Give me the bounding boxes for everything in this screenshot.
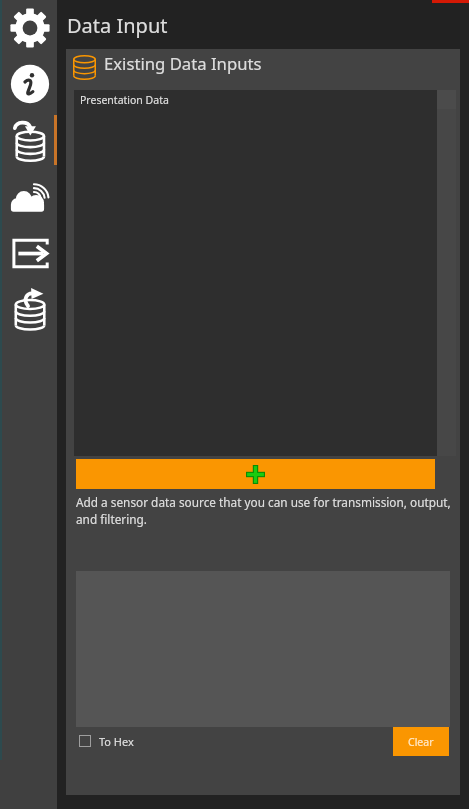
- button[interactable]: Add data input: [76, 459, 435, 489]
- button[interactable]: Info: [0, 56, 57, 112]
- button[interactable]: Clear: [393, 727, 449, 756]
- button[interactable]: Cloud transmit: [0, 168, 57, 224]
- staticText: To Hex: [99, 734, 134, 749]
- staticText: Clear: [408, 735, 434, 749]
- staticText: Presentation Data: [80, 93, 169, 107]
- button[interactable]: Data output: [0, 280, 57, 336]
- staticText: Add a sensor data source that you can us…: [76, 494, 456, 527]
- button[interactable]: Settings: [0, 0, 57, 56]
- staticText: Data Input: [67, 12, 168, 39]
- button[interactable]: To Hex: [79, 731, 134, 751]
- button[interactable]: Data input: [0, 112, 57, 168]
- button[interactable]: Output: [0, 224, 57, 280]
- button[interactable]: Presentation Data: [74, 90, 443, 456]
- staticText: Existing Data Inputs: [104, 52, 262, 75]
